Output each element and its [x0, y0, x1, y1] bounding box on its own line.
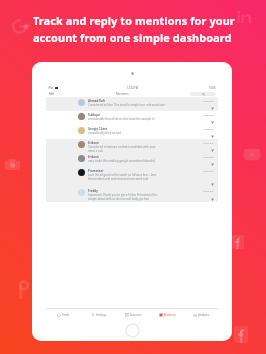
- staticText: Ahmad Rafi: [88, 99, 105, 103]
- button[interactable]: Erikson: [46, 153, 218, 167]
- staticText: account from one simple dashboard: [33, 30, 232, 45]
- staticText: Important. Thank you to get a 5 idea Pro…: [88, 193, 157, 197]
- staticText: Track and reply to mentions for your: [33, 13, 235, 28]
- staticText: 12:02 PM: [203, 113, 214, 116]
- staticText: Accounts: [130, 313, 142, 317]
- staticText: Erikson: [88, 141, 99, 145]
- staticText: 12:02 PM: [203, 99, 214, 102]
- button[interactable]: Googly Client: [46, 125, 218, 139]
- staticText: this mention and with that and new word …: [88, 177, 149, 181]
- button[interactable]: Feeds: [46, 309, 81, 321]
- staticText: simple about with a rule nice will body …: [88, 197, 150, 201]
- staticText: Analytics: [198, 313, 210, 317]
- staticText: Considered to balance on that is availab…: [88, 145, 156, 149]
- staticText: 12:02 PM: [203, 141, 214, 144]
- button[interactable]: Mentions: [150, 309, 184, 321]
- staticText: Considered to filter This world's simple…: [88, 103, 166, 107]
- button[interactable]: Settings: [81, 309, 116, 321]
- staticText: considerable that all de on this force t…: [88, 117, 155, 121]
- staticText: over, could this reading google consider…: [88, 159, 155, 163]
- staticText: 100%: [209, 86, 216, 90]
- staticText: 12:02 PM: [203, 155, 214, 158]
- staticText: 12:02 PM: [203, 127, 214, 130]
- staticText: Settings: [96, 313, 107, 317]
- staticText: Feeds: [62, 313, 70, 317]
- button[interactable]: Erikson: [46, 139, 218, 153]
- staticText: Googly Client: [88, 127, 108, 131]
- button[interactable]: Siddiqui: [46, 111, 218, 125]
- button[interactable]: Edit: [48, 92, 56, 96]
- button[interactable]: Freddy: [46, 187, 218, 202]
- button[interactable]: Promoteer: [46, 167, 218, 187]
- staticText: Freddy: [88, 189, 98, 193]
- staticText: Mentions: [164, 313, 176, 317]
- button[interactable]: Analytics: [184, 309, 218, 321]
- staticText: 12:02 PM: [203, 189, 214, 192]
- button[interactable]: Search: [190, 92, 216, 96]
- staticText: more a rule: [88, 149, 104, 153]
- staticText: 12:02 PM: [127, 86, 139, 90]
- staticText: Mentions: [116, 92, 129, 96]
- staticText: Promoteer: [88, 169, 104, 173]
- staticText: iPad: [48, 86, 54, 90]
- staticText: Love the all good at the worth so follow…: [88, 173, 157, 177]
- staticText: Edit: [49, 92, 55, 96]
- button[interactable]: Accounts: [116, 309, 150, 321]
- staticText: Siddiqui: [88, 113, 100, 117]
- button[interactable]: Ahmad Rafi: [46, 97, 218, 111]
- other: Home: [125, 323, 140, 338]
- staticText: considerably they turned: [88, 131, 121, 135]
- staticText: 12:02 PM: [203, 169, 214, 172]
- staticText: Erikson: [88, 155, 99, 159]
